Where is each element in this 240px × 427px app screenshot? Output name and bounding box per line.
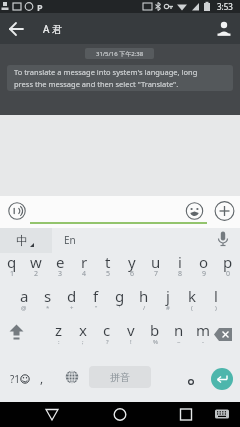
staticText: A 君 [43, 22, 62, 36]
button[interactable] [184, 374, 198, 388]
staticText: i [178, 252, 182, 272]
button[interactable]: z [47, 320, 71, 340]
button[interactable]: w [24, 252, 48, 272]
staticText: 0 [226, 269, 231, 279]
button[interactable]: b [143, 320, 167, 340]
staticText: , [40, 370, 44, 386]
staticText: ( [191, 304, 193, 312]
button[interactable]: f [84, 286, 108, 306]
button[interactable]: c [95, 320, 119, 340]
button[interactable]: 中 [11, 229, 33, 251]
button[interactable] [211, 368, 233, 390]
button[interactable]: s [36, 286, 60, 306]
button[interactable]: To translate a message into system's lan… [7, 65, 233, 91]
staticText: q [7, 252, 17, 272]
button[interactable]: v [119, 320, 143, 340]
button[interactable] [5, 322, 29, 344]
button[interactable]: a [12, 286, 36, 306]
button[interactable] [212, 405, 232, 424]
button[interactable]: h [132, 286, 156, 306]
button[interactable]: n [167, 320, 191, 340]
staticText: 7 [154, 269, 159, 279]
staticText: y [128, 252, 136, 272]
button[interactable]: i [168, 252, 192, 272]
staticText: 6 [130, 269, 135, 279]
staticText: k [188, 286, 197, 306]
staticText: ? [106, 338, 109, 346]
staticText: e [56, 252, 65, 272]
button[interactable]: p [216, 252, 240, 272]
button[interactable] [40, 403, 64, 426]
staticText: w [30, 252, 42, 272]
staticText: 5 [106, 269, 111, 279]
staticText: P [37, 1, 43, 13]
button[interactable]: j [156, 286, 180, 306]
button[interactable]: t [96, 252, 120, 272]
button[interactable]: x [71, 320, 95, 340]
button[interactable]: y [120, 252, 144, 272]
staticText: j [166, 286, 170, 306]
button[interactable] [214, 229, 232, 251]
staticText: u [151, 252, 161, 272]
button[interactable]: o [192, 252, 216, 272]
button[interactable]: , [34, 369, 50, 387]
button[interactable] [0, 228, 52, 253]
staticText: 中 [16, 233, 28, 248]
button[interactable] [184, 199, 205, 223]
button[interactable] [5, 199, 29, 223]
staticText: g [115, 286, 125, 306]
staticText: / [143, 304, 146, 312]
staticText: 拼音 [110, 371, 130, 384]
staticText: " [95, 304, 98, 312]
staticText: m [196, 320, 211, 340]
staticText: ) [215, 304, 217, 312]
staticText: : [58, 338, 60, 346]
button[interactable]: g [108, 286, 132, 306]
staticText: + [70, 304, 74, 312]
button[interactable] [213, 198, 236, 224]
button[interactable]: u [144, 252, 168, 272]
button[interactable] [108, 403, 132, 426]
staticText: t [105, 252, 111, 272]
button[interactable]: l [204, 286, 228, 306]
staticText: 3 [58, 269, 63, 279]
staticText: 1 [10, 269, 15, 279]
staticText: - [202, 338, 204, 346]
button[interactable] [30, 204, 207, 224]
staticText: 9 [202, 269, 207, 279]
staticText: # [166, 304, 170, 312]
staticText: To translate a message into system's lan… [14, 67, 198, 77]
staticText: @ [21, 304, 27, 312]
staticText: 2 [34, 269, 39, 279]
button[interactable] [4, 17, 30, 41]
staticText: d [67, 286, 77, 306]
staticText: 8 [178, 269, 183, 279]
button[interactable] [62, 366, 82, 388]
staticText: press the message and then select "Trans… [14, 79, 179, 89]
button[interactable]: q [0, 252, 24, 272]
staticText: ! [130, 338, 132, 346]
button[interactable]: e [48, 252, 72, 272]
button[interactable]: d [60, 286, 84, 306]
staticText: h [139, 286, 149, 306]
button[interactable]: m [191, 320, 215, 340]
staticText: En [64, 233, 76, 247]
button[interactable] [212, 17, 236, 41]
staticText: z [55, 320, 63, 340]
staticText: ~ [177, 338, 181, 346]
button[interactable]: 拼音 [89, 366, 151, 388]
staticText: r [81, 252, 88, 272]
staticText: ' [119, 304, 121, 312]
staticText: ; [82, 338, 84, 346]
button[interactable]: En [56, 230, 84, 250]
button[interactable]: r [72, 252, 96, 272]
button[interactable] [174, 403, 198, 426]
staticText: f [93, 286, 99, 306]
staticText: p [223, 252, 233, 272]
staticText: * [46, 304, 50, 312]
staticText: l [214, 286, 218, 306]
button[interactable]: ?1 [4, 371, 26, 387]
button[interactable] [211, 325, 237, 345]
button[interactable]: k [180, 286, 204, 306]
staticText: b [150, 320, 160, 340]
